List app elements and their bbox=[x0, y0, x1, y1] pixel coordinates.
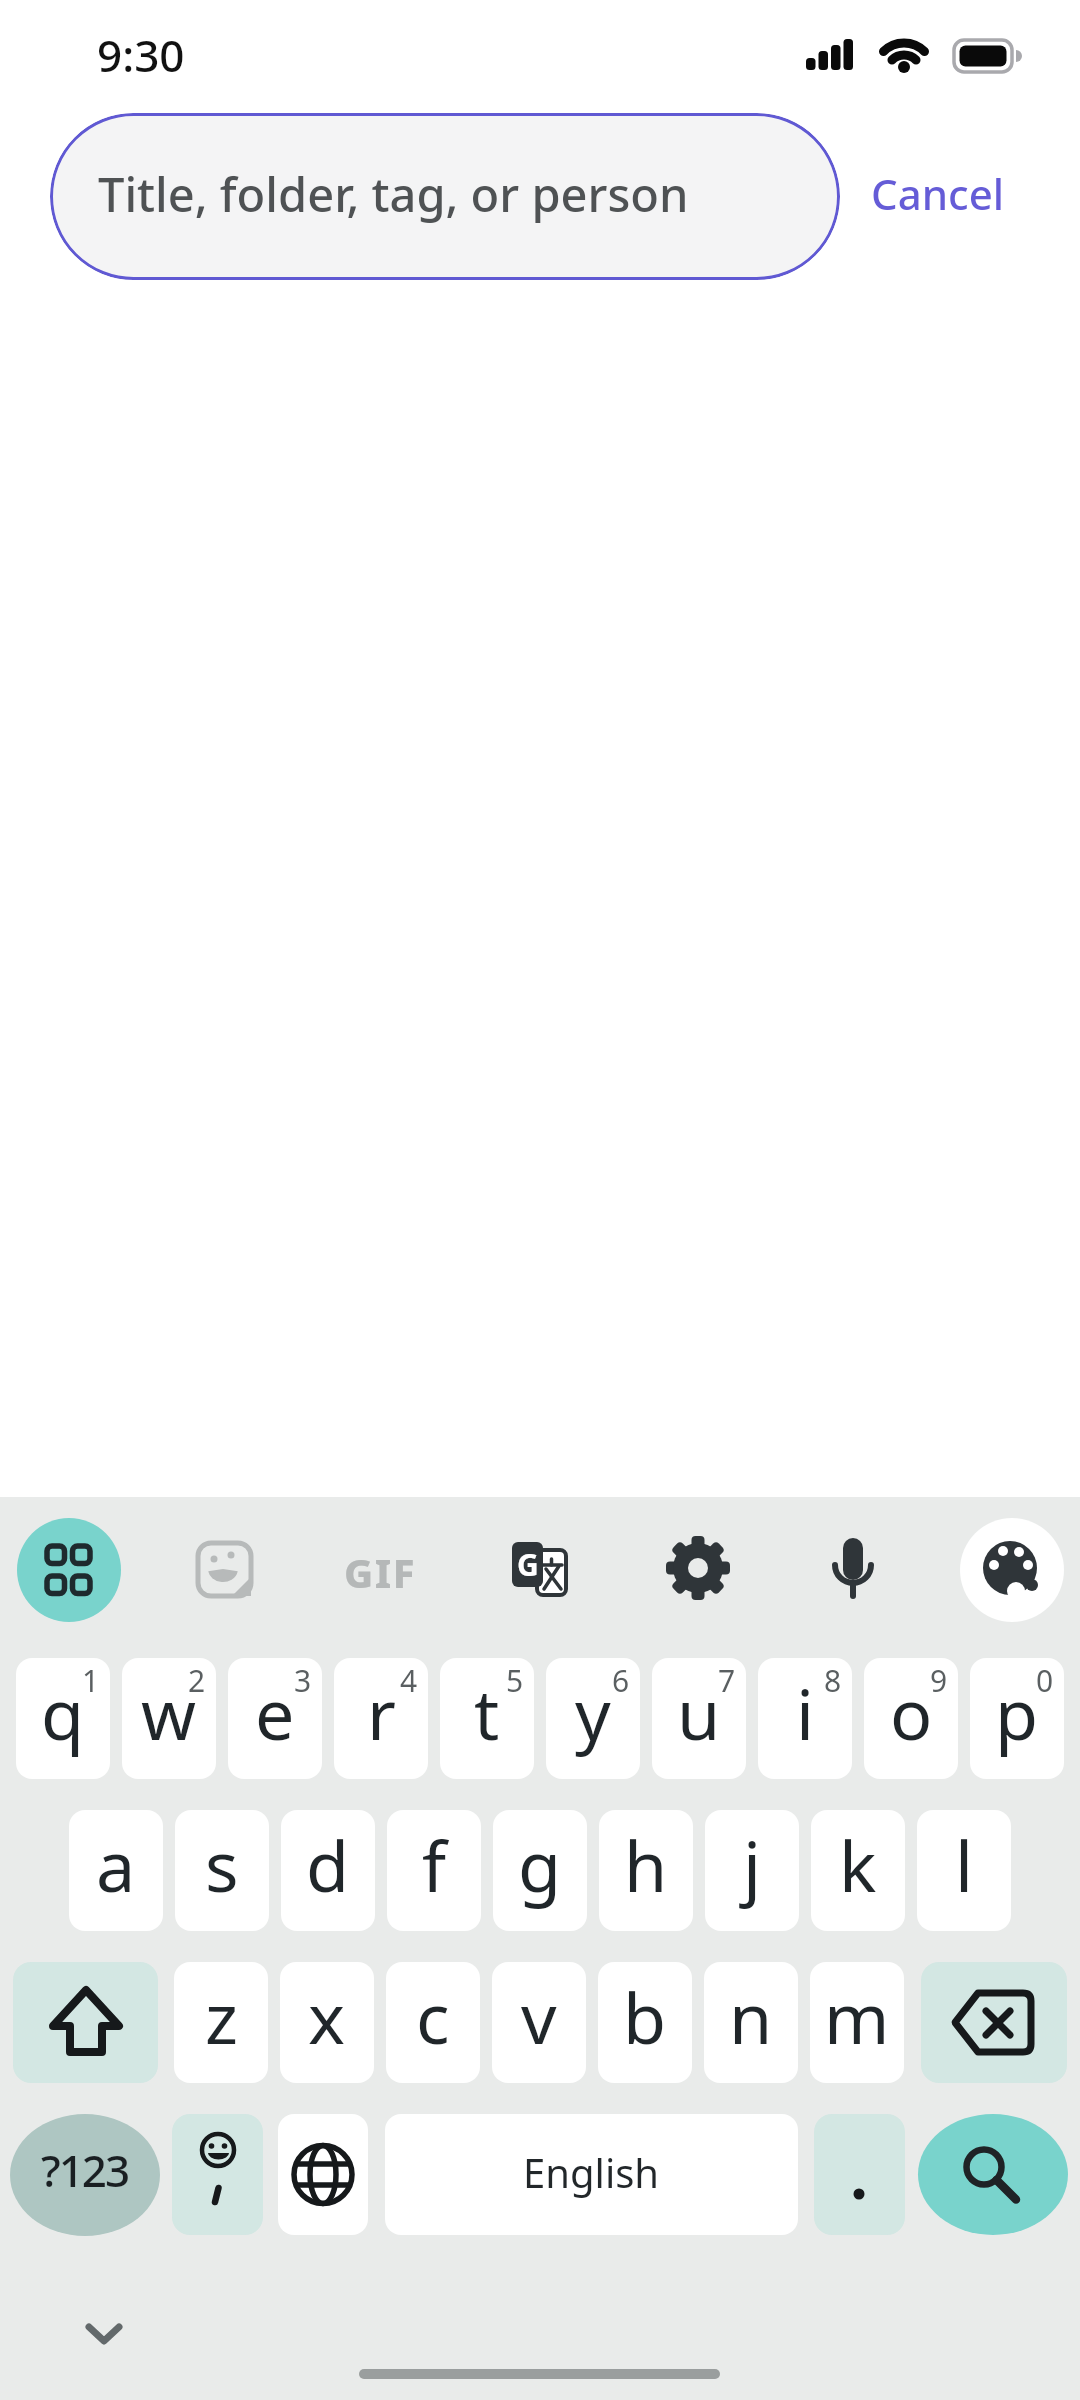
staticText: u bbox=[677, 1665, 721, 1760]
button[interactable] bbox=[17, 1518, 121, 1622]
staticText: c bbox=[416, 1969, 450, 2064]
button[interactable]: English bbox=[385, 2114, 798, 2235]
button[interactable]: p bbox=[970, 1658, 1064, 1779]
staticText: Title, folder, tag, or person bbox=[98, 162, 689, 226]
staticText: g bbox=[518, 1817, 562, 1912]
staticText: w bbox=[141, 1665, 197, 1760]
button[interactable]: j bbox=[705, 1810, 799, 1931]
staticText: i bbox=[796, 1665, 815, 1760]
button[interactable]: u bbox=[652, 1658, 746, 1779]
staticText: p bbox=[995, 1665, 1039, 1760]
staticText: Cancel bbox=[871, 165, 1005, 222]
staticText: 5 bbox=[506, 1660, 524, 1701]
button[interactable] bbox=[960, 1518, 1064, 1622]
staticText: 3 bbox=[294, 1660, 312, 1701]
button[interactable] bbox=[330, 1519, 430, 1619]
staticText: r bbox=[367, 1665, 396, 1760]
staticText: f bbox=[422, 1817, 447, 1912]
button[interactable]: x bbox=[280, 1962, 374, 2083]
button[interactable]: d bbox=[281, 1810, 375, 1931]
staticText: 9:30 bbox=[97, 25, 185, 85]
button[interactable]: y bbox=[546, 1658, 640, 1779]
button[interactable] bbox=[13, 1962, 158, 2083]
staticText: h bbox=[624, 1817, 668, 1912]
button[interactable] bbox=[803, 1519, 903, 1619]
staticText: y bbox=[575, 1665, 611, 1760]
button[interactable]: c bbox=[386, 1962, 480, 2083]
button[interactable]: i bbox=[758, 1658, 852, 1779]
button[interactable]: h bbox=[599, 1810, 693, 1931]
staticText: 2 bbox=[188, 1660, 206, 1701]
staticText: z bbox=[205, 1969, 238, 2064]
button[interactable] bbox=[74, 2304, 134, 2364]
button[interactable] bbox=[918, 2114, 1068, 2235]
button[interactable]: n bbox=[704, 1962, 798, 2083]
staticText: q bbox=[41, 1665, 85, 1760]
button[interactable]: m bbox=[810, 1962, 904, 2083]
staticText: o bbox=[890, 1665, 933, 1760]
staticText: 7 bbox=[718, 1660, 736, 1701]
staticText: 1 bbox=[82, 1660, 100, 1701]
button[interactable]: v bbox=[492, 1962, 586, 2083]
staticText: x bbox=[308, 1969, 346, 2064]
button[interactable] bbox=[921, 1962, 1067, 2083]
button[interactable]: e bbox=[228, 1658, 322, 1779]
button[interactable]: o bbox=[864, 1658, 958, 1779]
staticText: G bbox=[517, 1544, 539, 1585]
button[interactable]: k bbox=[811, 1810, 905, 1931]
button[interactable]: s bbox=[175, 1810, 269, 1931]
button[interactable]: Cancel bbox=[860, 153, 1015, 233]
staticText: s bbox=[205, 1817, 239, 1912]
staticText: 0 bbox=[1036, 1660, 1054, 1701]
staticText: n bbox=[729, 1969, 773, 2064]
staticText: 8 bbox=[824, 1660, 842, 1701]
staticText: d bbox=[306, 1817, 350, 1912]
button[interactable] bbox=[174, 1519, 274, 1619]
staticText: 9 bbox=[930, 1660, 948, 1701]
button[interactable] bbox=[648, 1519, 748, 1619]
button[interactable]: ?123 bbox=[10, 2114, 160, 2236]
button[interactable]: r bbox=[334, 1658, 428, 1779]
staticText: a bbox=[96, 1817, 136, 1912]
staticText: English bbox=[523, 2145, 660, 2199]
button[interactable]: q bbox=[16, 1658, 110, 1779]
staticText: GIF bbox=[344, 1545, 417, 1599]
button[interactable]: w bbox=[122, 1658, 216, 1779]
staticText: ?123 bbox=[41, 2140, 129, 2200]
staticText: k bbox=[839, 1817, 877, 1912]
button[interactable] bbox=[278, 2114, 368, 2235]
staticText: j bbox=[743, 1817, 762, 1912]
button[interactable]: f bbox=[387, 1810, 481, 1931]
button[interactable]: z bbox=[174, 1962, 268, 2083]
staticText: 6 bbox=[612, 1660, 630, 1701]
button[interactable] bbox=[814, 2114, 905, 2235]
staticText: v bbox=[521, 1969, 557, 2064]
staticText: e bbox=[255, 1665, 295, 1760]
button[interactable]: b bbox=[598, 1962, 692, 2083]
button[interactable]: l bbox=[917, 1810, 1011, 1931]
button[interactable]: t bbox=[440, 1658, 534, 1779]
button[interactable] bbox=[172, 2114, 263, 2235]
button[interactable]: Title, folder, tag, or person bbox=[50, 113, 840, 280]
staticText: l bbox=[955, 1817, 974, 1912]
button[interactable]: g bbox=[493, 1810, 587, 1931]
button[interactable] bbox=[490, 1519, 590, 1619]
staticText: m bbox=[824, 1969, 890, 2064]
staticText: b bbox=[623, 1969, 667, 2064]
button[interactable]: a bbox=[69, 1810, 163, 1931]
staticText: 4 bbox=[400, 1660, 418, 1701]
staticText: t bbox=[474, 1665, 500, 1760]
